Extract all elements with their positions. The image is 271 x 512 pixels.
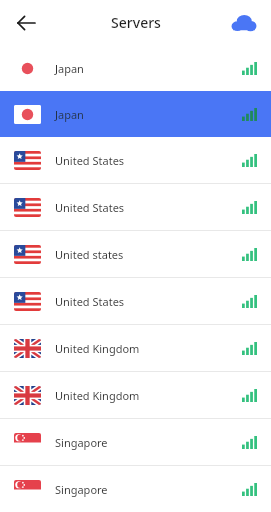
- staticText: Servers: [111, 13, 161, 32]
- staticText: Japan: [55, 107, 84, 122]
- staticText: Singapore: [55, 482, 108, 497]
- staticText: United States: [55, 153, 125, 168]
- button[interactable]: Singapore: [0, 466, 271, 512]
- staticText: Japan: [55, 61, 84, 76]
- button[interactable]: United Kingdom: [0, 325, 271, 371]
- button[interactable]: Japan: [0, 45, 271, 91]
- staticText: United States: [55, 294, 125, 309]
- button[interactable]: Japan: [0, 91, 271, 137]
- button[interactable]: United states: [0, 231, 271, 277]
- button[interactable]: United States: [0, 184, 271, 230]
- staticText: United Kingdom: [55, 388, 140, 403]
- button[interactable]: United States: [0, 278, 271, 324]
- staticText: United Kingdom: [55, 341, 140, 356]
- staticText: United States: [55, 200, 125, 215]
- button[interactable]: Singapore: [0, 419, 271, 465]
- button[interactable]: United Kingdom: [0, 372, 271, 418]
- button[interactable]: Back: [8, 5, 44, 41]
- staticText: Singapore: [55, 435, 108, 450]
- button[interactable]: United States: [0, 137, 271, 183]
- button[interactable]: Cloud: [227, 6, 261, 40]
- staticText: United states: [55, 247, 124, 262]
